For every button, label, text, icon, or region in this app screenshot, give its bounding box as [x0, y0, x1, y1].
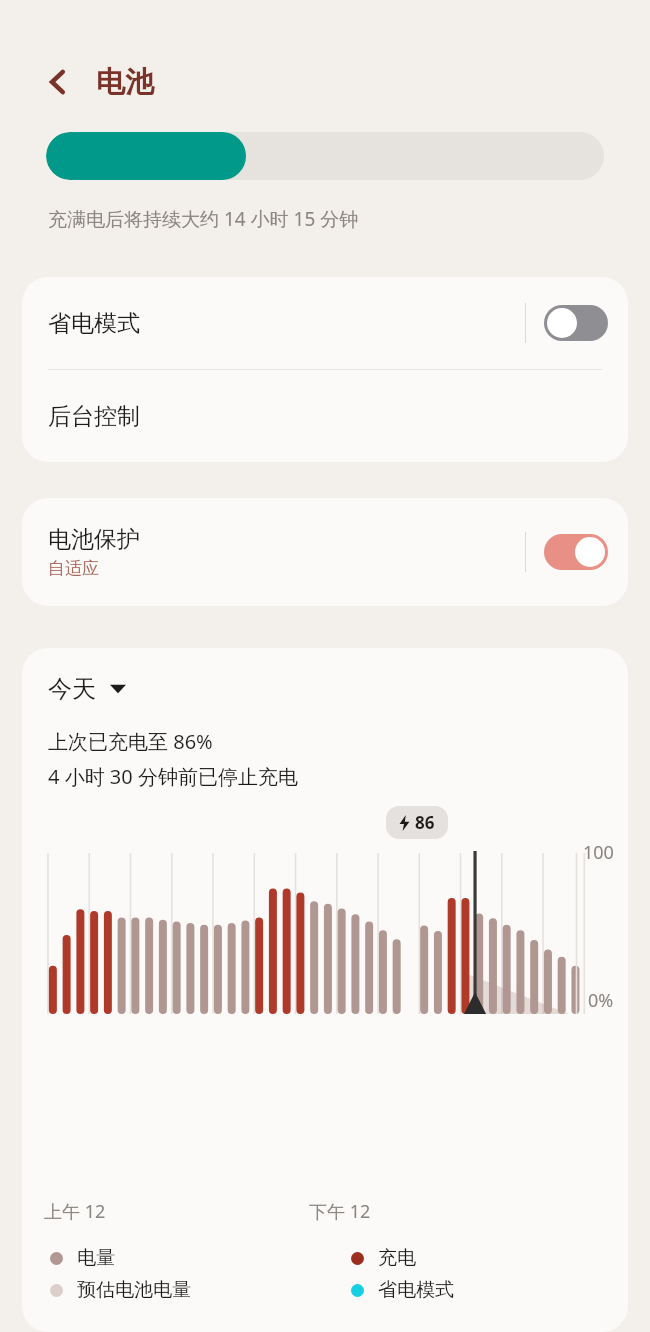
- staticText: 充满电后将持续大约 14 小时 15 分钟: [48, 206, 359, 232]
- button[interactable]: Toggle off: [544, 305, 608, 341]
- staticText: 充电: [378, 1246, 416, 1270]
- staticText: 4 小时 30 分钟前已停止充电: [48, 763, 298, 790]
- staticText: 86: [415, 811, 435, 834]
- staticText: 后台控制: [48, 402, 140, 431]
- staticText: 电池保护: [48, 525, 140, 554]
- button[interactable]: Toggle on: [544, 534, 608, 570]
- button[interactable]: 今天: [48, 674, 126, 704]
- staticText: 100: [583, 840, 614, 865]
- button[interactable]: 省电模式: [22, 277, 628, 369]
- staticText: 上午 12: [44, 1199, 106, 1224]
- staticText: 下午 12: [309, 1199, 371, 1224]
- staticText: 电量: [77, 1246, 115, 1270]
- staticText: 省电模式: [378, 1278, 454, 1302]
- staticText: 上次已充电至 86%: [48, 728, 213, 755]
- button[interactable]: Back: [36, 60, 80, 104]
- button[interactable]: 后台控制: [22, 370, 628, 462]
- staticText: 电池: [96, 64, 154, 101]
- staticText: 0%: [588, 988, 614, 1013]
- button[interactable]: 电池保护: [22, 498, 628, 606]
- staticText: 预估电池电量: [77, 1278, 191, 1302]
- staticText: 今天: [48, 674, 96, 704]
- staticText: 自适应: [48, 558, 99, 579]
- staticText: 省电模式: [48, 309, 140, 338]
